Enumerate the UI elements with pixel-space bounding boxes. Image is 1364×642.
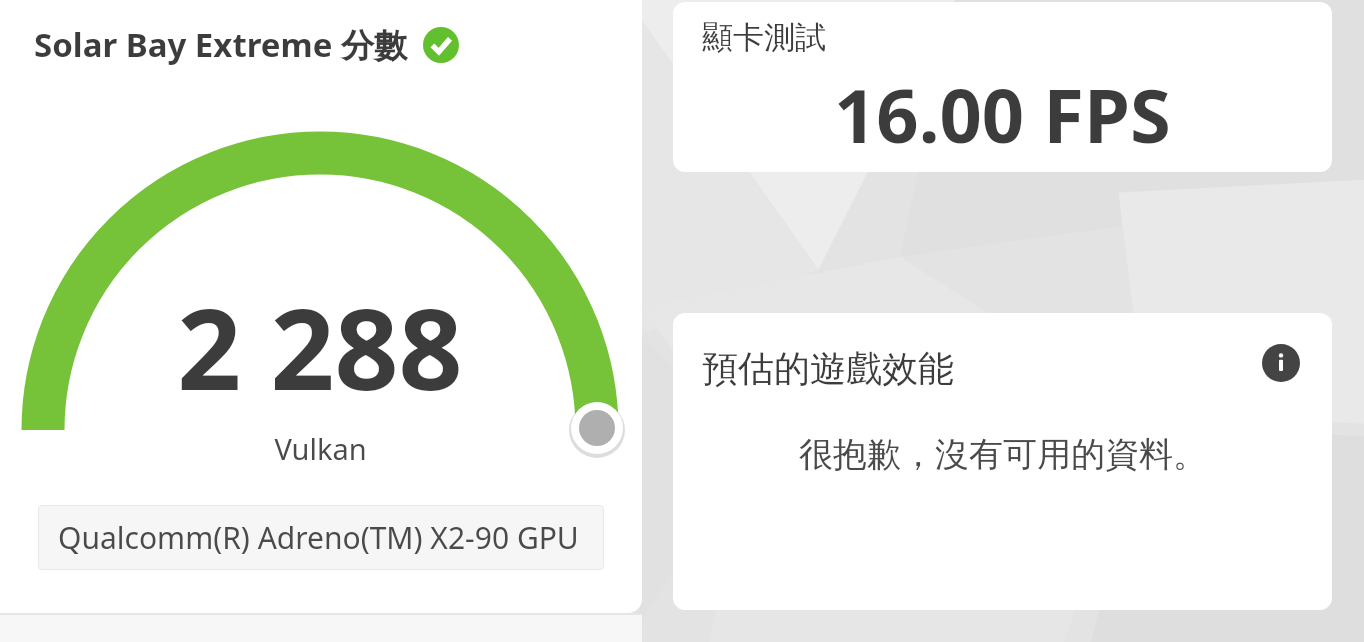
button[interactable]: Solar Bay Extreme 分數 bbox=[34, 22, 459, 67]
staticText: Qualcomm(R) Adreno(TM) X2-90 GPU bbox=[58, 517, 579, 558]
staticText: 顯卡測試 bbox=[702, 18, 826, 57]
staticText: 2 288 bbox=[177, 270, 463, 423]
staticText: 很抱歉，沒有可用的資料。 bbox=[799, 433, 1207, 476]
staticText: 16.00 FPS bbox=[834, 64, 1171, 165]
other: Validated bbox=[423, 27, 459, 63]
button[interactable]: 顯卡測試 bbox=[673, 2, 1332, 172]
button[interactable]: Info bbox=[1261, 343, 1301, 383]
staticText: Vulkan bbox=[274, 429, 367, 468]
button[interactable]: Qualcomm(R) Adreno(TM) X2-90 GPU bbox=[38, 505, 604, 570]
staticText: Solar Bay Extreme 分數 bbox=[34, 22, 407, 67]
staticText: 預估的遊戲效能 bbox=[702, 346, 954, 391]
